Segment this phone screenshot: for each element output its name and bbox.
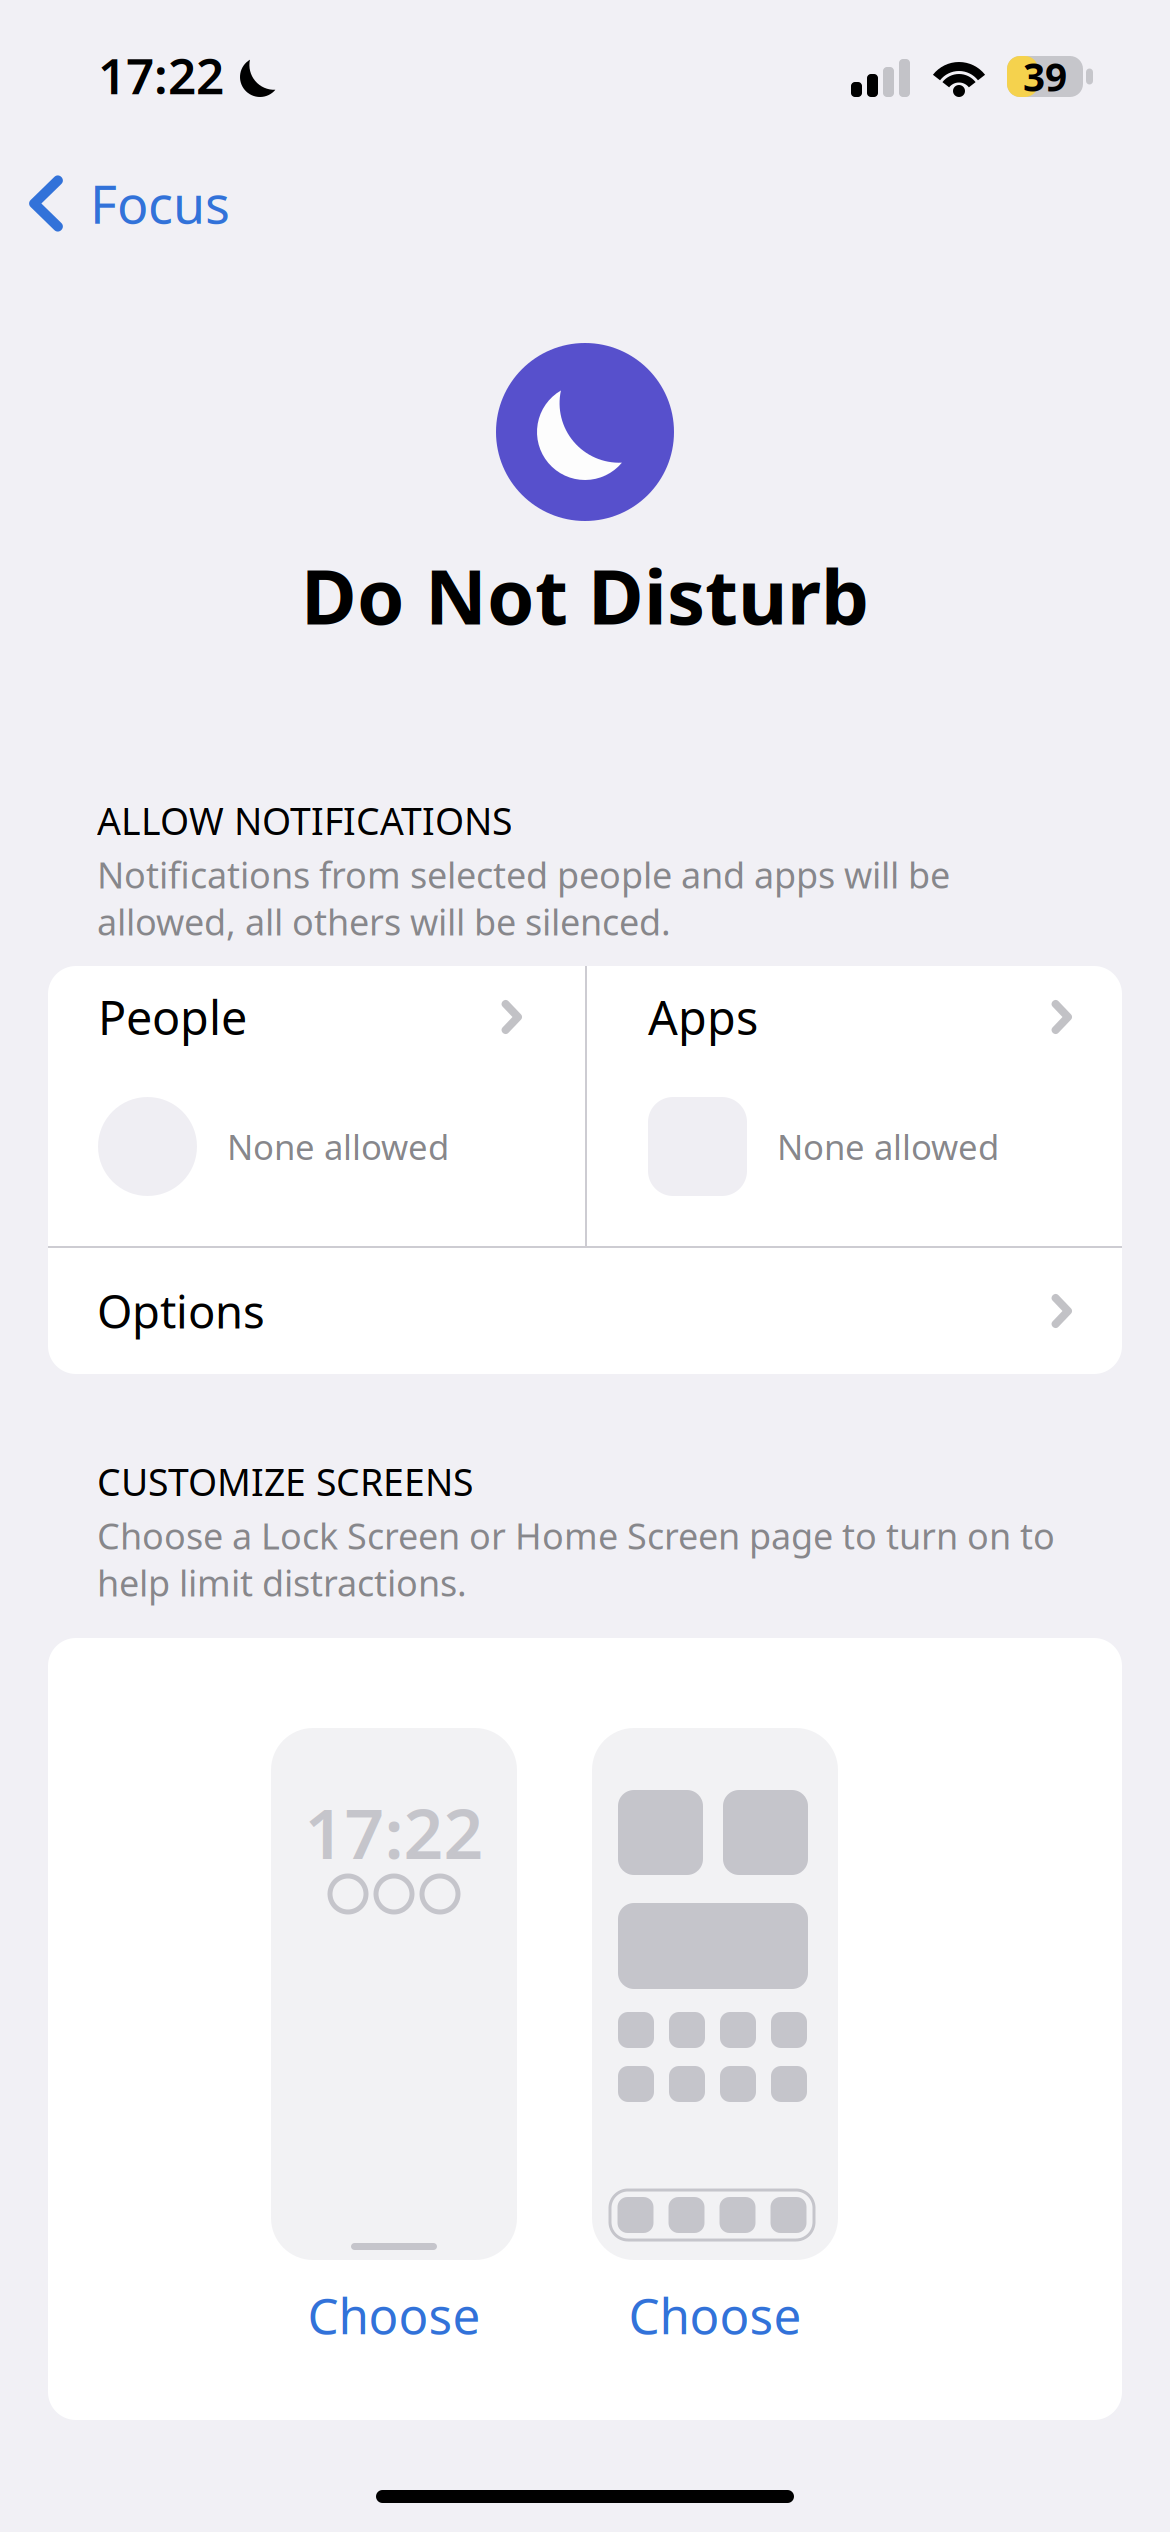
button[interactable]: People <box>48 966 585 1246</box>
staticText: Choose <box>307 2282 480 2348</box>
button[interactable]: Choose <box>271 2260 517 2370</box>
button[interactable]: Choose <box>592 2260 838 2370</box>
staticText: help limit distractions. <box>97 1559 467 1606</box>
staticText: None allowed <box>777 1123 999 1169</box>
button[interactable]: Focus <box>0 141 256 260</box>
staticText: Options <box>97 1281 265 1341</box>
staticText: Apps <box>648 986 758 1048</box>
staticText: ALLOW NOTIFICATIONS <box>97 796 512 845</box>
staticText: allowed, all others will be silenced. <box>97 898 671 945</box>
staticText: People <box>98 986 247 1048</box>
staticText: 17:22 <box>304 1786 483 1878</box>
staticText: Focus <box>90 169 230 238</box>
staticText: Notifications from selected people and a… <box>97 851 950 898</box>
staticText: CUSTOMIZE SCREENS <box>97 1457 473 1506</box>
staticText: 17:22 <box>98 42 224 108</box>
staticText: 39 <box>1023 51 1067 102</box>
staticText: Choose a Lock Screen or Home Screen page… <box>97 1512 1055 1559</box>
button[interactable]: Options <box>48 1248 1122 1374</box>
staticText: Choose <box>628 2282 801 2348</box>
staticText: Do Not Disturb <box>301 544 869 645</box>
button[interactable]: Apps <box>587 966 1122 1246</box>
staticText: None allowed <box>227 1123 449 1169</box>
